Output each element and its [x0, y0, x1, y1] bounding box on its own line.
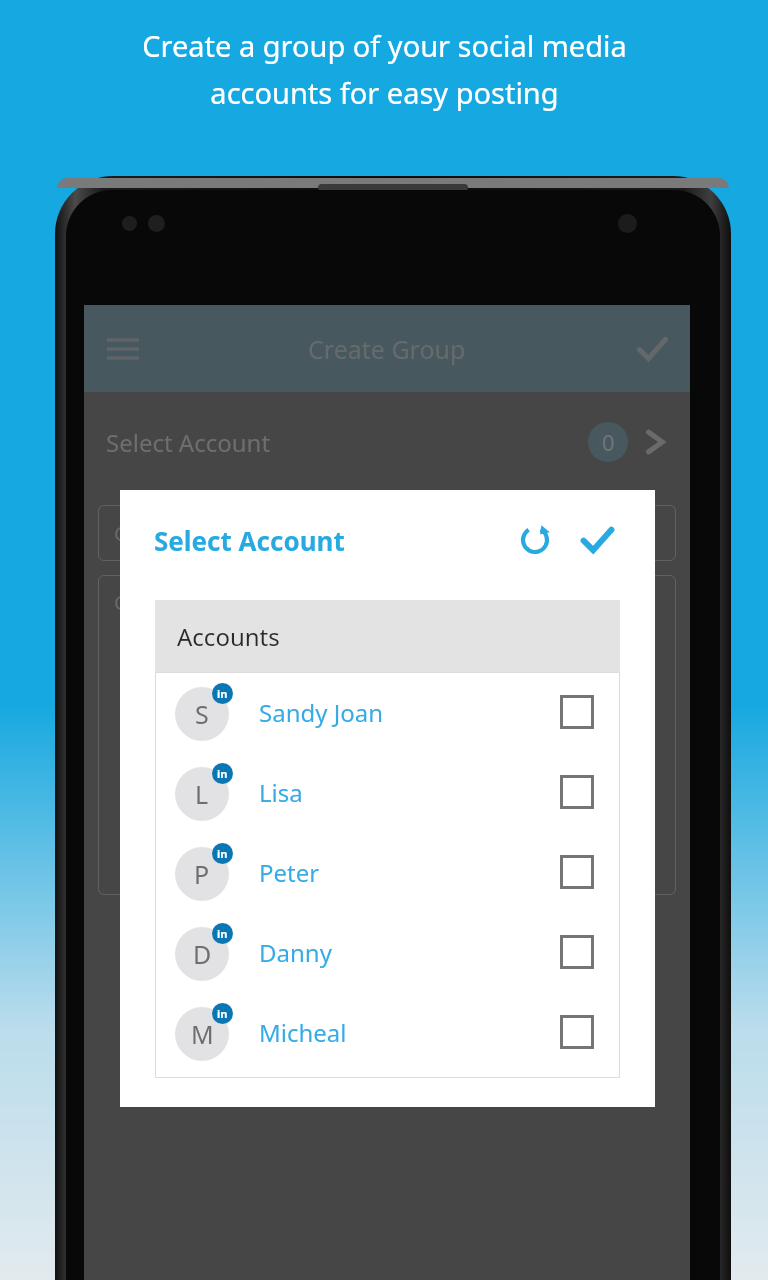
staticText: Accounts — [177, 620, 280, 653]
button[interactable]: Select Account — [84, 392, 690, 492]
button[interactable]: Done — [626, 323, 678, 375]
button[interactable]: P — [155, 832, 620, 912]
staticText: Group Description — [114, 589, 286, 616]
button[interactable]: L — [155, 752, 620, 832]
staticText: accounts for easy posting — [210, 73, 559, 112]
staticText: in — [217, 1006, 228, 1021]
button[interactable]: D — [155, 912, 620, 992]
staticText: in — [217, 686, 228, 701]
staticText: in — [217, 846, 228, 861]
staticText: Danny — [259, 936, 332, 969]
staticText: P — [194, 857, 210, 891]
button[interactable]: Refresh — [511, 516, 559, 564]
staticText: S — [195, 697, 209, 731]
staticText: Sandy Joan — [259, 696, 384, 729]
button[interactable]: S — [155, 672, 620, 752]
staticText: D — [193, 937, 212, 971]
staticText: Select Account — [154, 523, 345, 558]
staticText: Create Group — [308, 332, 466, 366]
staticText: Group Name — [114, 520, 235, 547]
staticText: Select Account — [106, 426, 271, 459]
button[interactable]: Menu — [98, 324, 148, 374]
button[interactable]: M — [155, 992, 620, 1072]
staticText: in — [217, 766, 228, 781]
staticText: Peter — [259, 856, 320, 889]
staticText: Lisa — [259, 776, 303, 809]
staticText: in — [217, 926, 228, 941]
staticText: L — [195, 777, 209, 811]
button[interactable]: Confirm — [573, 516, 621, 564]
staticText: Create a group of your social media — [142, 26, 627, 65]
staticText: Micheal — [259, 1016, 347, 1049]
staticText: 0 — [602, 427, 615, 457]
staticText: M — [191, 1017, 214, 1051]
